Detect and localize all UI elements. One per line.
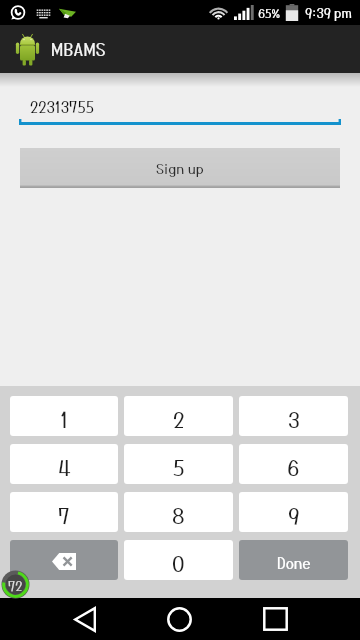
button[interactable]: Done: [239, 540, 348, 580]
button[interactable]: 0: [124, 540, 233, 580]
button[interactable]: Back: [65, 599, 105, 639]
button[interactable]: 7: [10, 492, 118, 532]
button[interactable]: 9: [239, 492, 348, 532]
button[interactable]: 3: [239, 396, 348, 436]
button[interactable]: 5: [124, 444, 233, 484]
button[interactable]: 8: [124, 492, 233, 532]
button[interactable]: 4: [10, 444, 118, 484]
staticText: 3: [288, 407, 300, 432]
staticText: 72: [8, 578, 23, 593]
staticText: 1: [60, 407, 69, 432]
button[interactable]: 2: [124, 396, 233, 436]
staticText: 7: [58, 503, 70, 528]
button[interactable]: Sign up: [20, 148, 340, 188]
staticText: 0: [172, 551, 185, 576]
staticText: 65%: [258, 6, 281, 20]
staticText: 8: [172, 503, 185, 528]
button[interactable]: Backspace: [10, 540, 118, 580]
staticText: 22313755: [30, 98, 94, 116]
staticText: 9:39 pm: [305, 5, 352, 20]
staticText: 4: [58, 455, 71, 480]
button[interactable]: 6: [239, 444, 348, 484]
staticText: Done: [277, 554, 311, 572]
staticText: 5: [173, 455, 185, 480]
staticText: MBAMS: [51, 39, 106, 59]
staticText: 9: [288, 503, 300, 528]
button[interactable]: 1: [10, 396, 118, 436]
button[interactable]: Home: [159, 599, 199, 639]
staticText: 6: [287, 455, 300, 480]
staticText: 2: [173, 407, 185, 432]
button[interactable]: Recents: [255, 599, 295, 639]
staticText: Sign up: [156, 160, 204, 177]
